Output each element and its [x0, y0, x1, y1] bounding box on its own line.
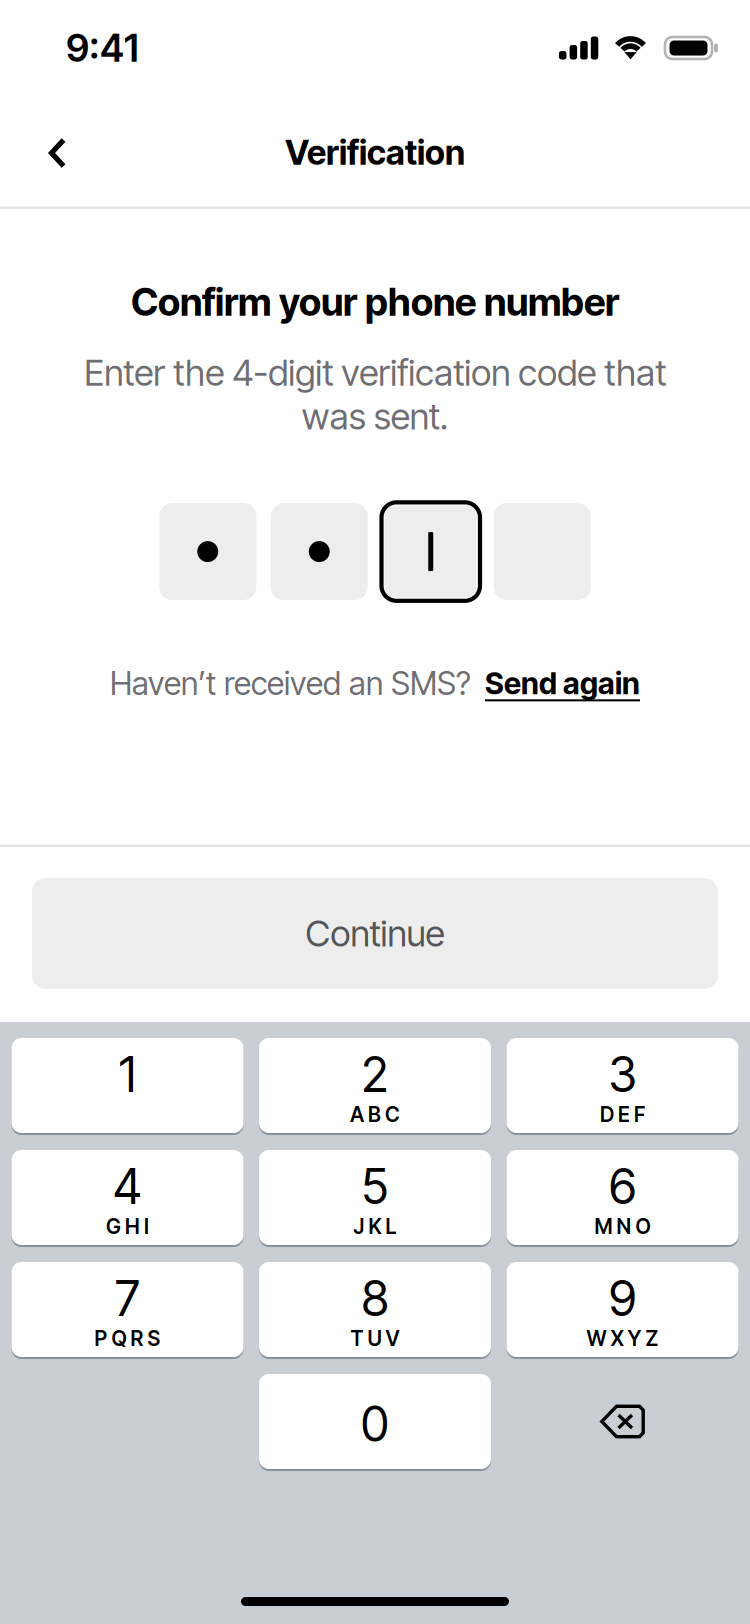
button[interactable]: Back [27, 116, 93, 188]
staticText: D E F [600, 1102, 645, 1127]
staticText: W X Y Z [586, 1326, 658, 1351]
staticText: Continue [305, 912, 444, 955]
button[interactable]: 9 [506, 1262, 738, 1357]
button[interactable]: Delete [506, 1374, 738, 1469]
button[interactable]: Continue [0, 847, 750, 1022]
staticText: 2 [361, 1045, 388, 1104]
button[interactable]: 8 [259, 1262, 491, 1357]
staticText: 3 [608, 1045, 636, 1104]
button[interactable]: 3 [506, 1038, 738, 1133]
button[interactable]: 2 [259, 1038, 491, 1133]
staticText: 9 [609, 1269, 636, 1328]
staticText: 1 [119, 1045, 136, 1104]
staticText: 8 [361, 1269, 388, 1328]
staticText: P Q R S [94, 1326, 160, 1351]
staticText: T U V [350, 1326, 399, 1351]
staticText: J K L [353, 1214, 396, 1239]
button[interactable]: 4 [11, 1150, 243, 1245]
button[interactable]: 6 [506, 1150, 738, 1245]
button[interactable]: 7 [11, 1262, 243, 1357]
staticText: Enter the 4-digit verification code that… [84, 351, 666, 438]
staticText: Send again [485, 665, 640, 702]
button[interactable]: 5 [259, 1150, 491, 1245]
staticText: G H I [106, 1214, 149, 1239]
button[interactable]: 1 [11, 1038, 243, 1133]
staticText: Verification [285, 132, 465, 173]
button[interactable]: Send again [471, 665, 640, 702]
staticText: Haven’t received an SMS? [110, 664, 471, 703]
staticText: A B C [350, 1102, 400, 1127]
staticText: 4 [113, 1157, 142, 1216]
staticText: 7 [115, 1269, 140, 1328]
staticText: M N O [594, 1214, 650, 1239]
button[interactable]: 0 [259, 1374, 491, 1469]
staticText: 0 [361, 1395, 389, 1453]
staticText: 6 [609, 1157, 636, 1216]
staticText: 9:41 [66, 25, 139, 71]
staticText: 5 [361, 1157, 388, 1216]
staticText: Confirm your phone number [131, 279, 619, 325]
